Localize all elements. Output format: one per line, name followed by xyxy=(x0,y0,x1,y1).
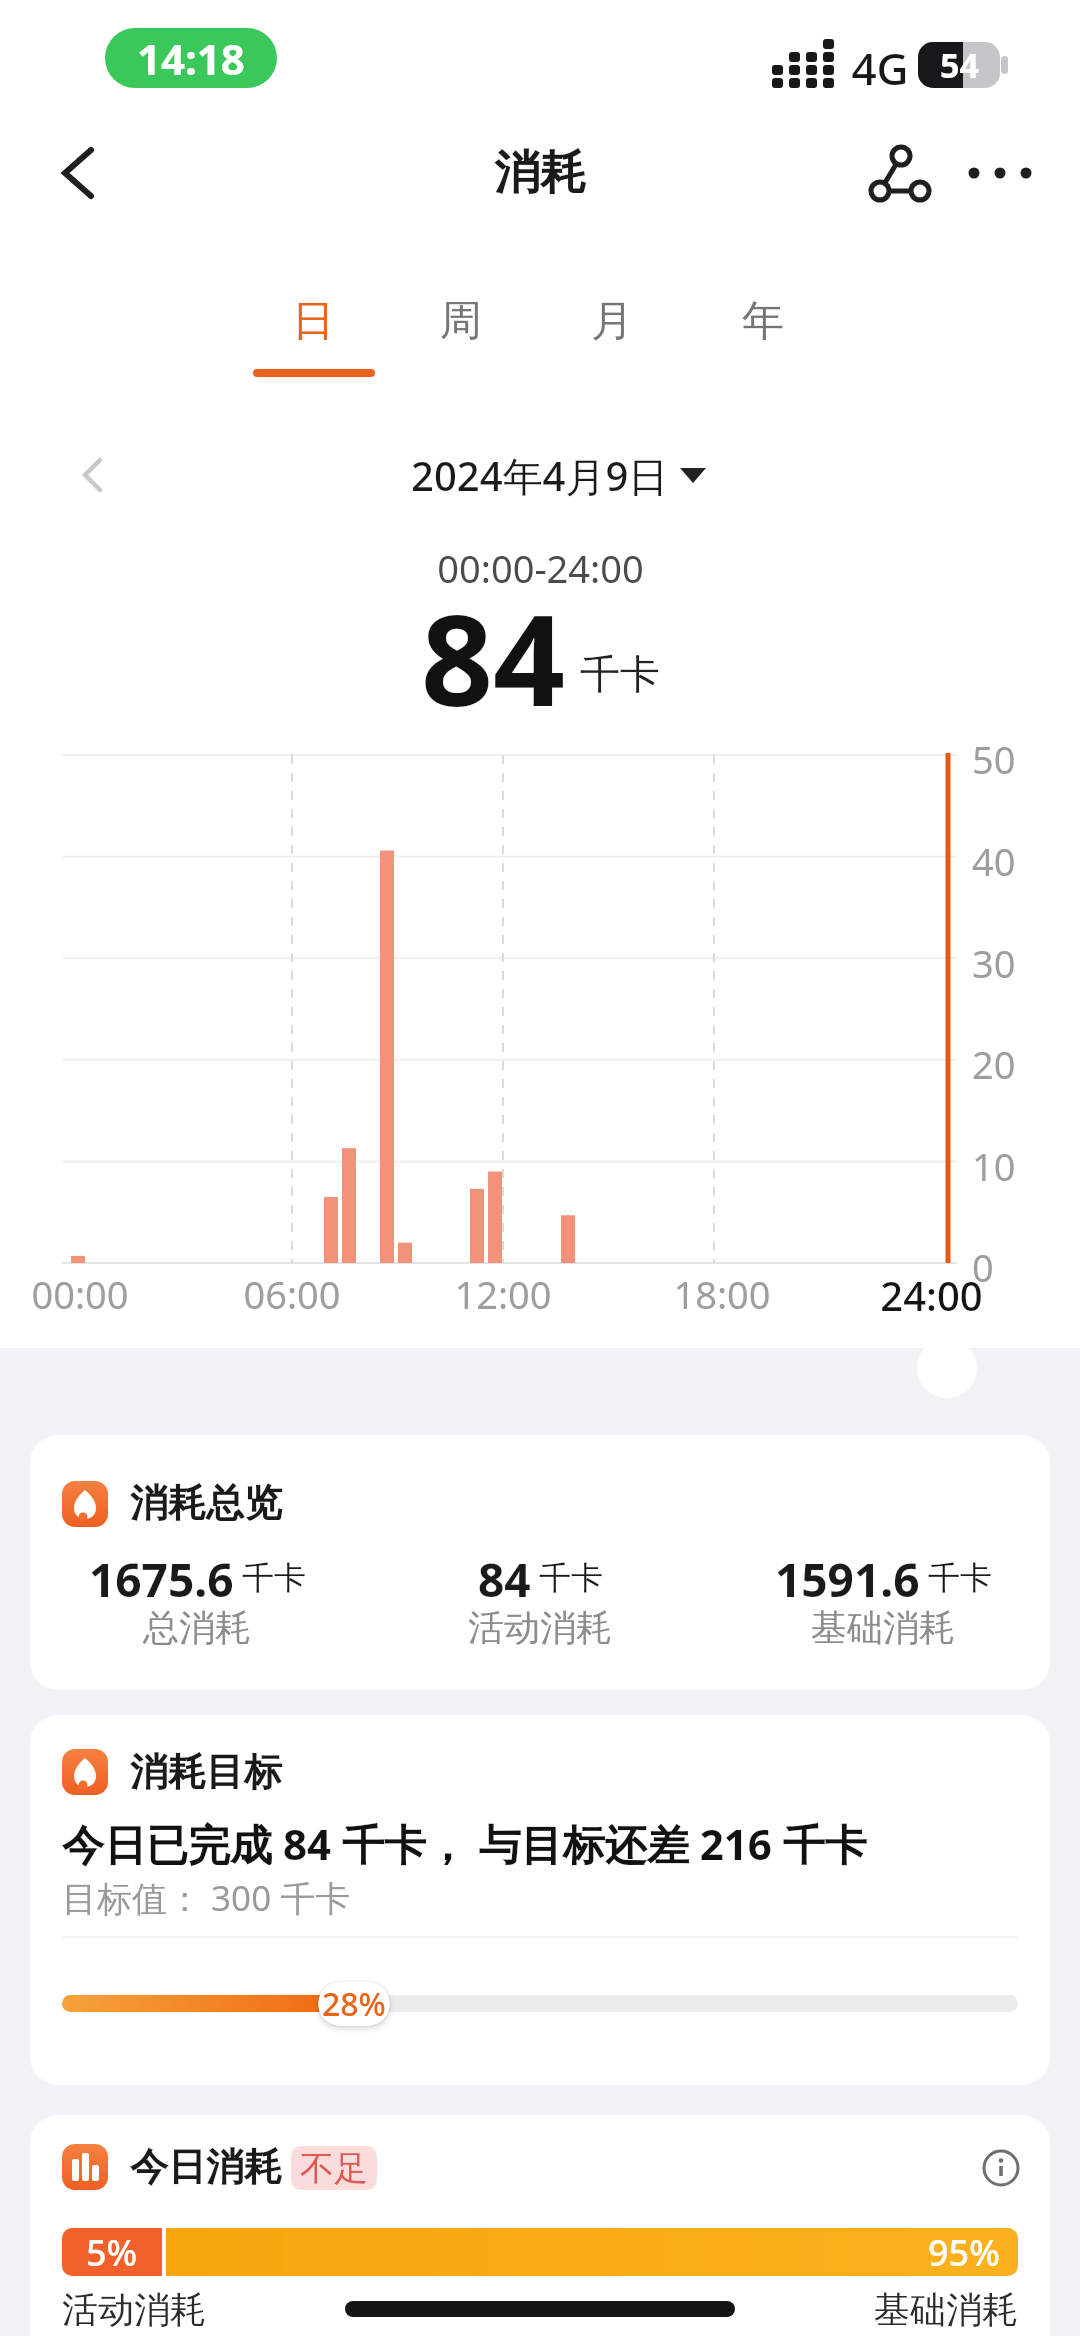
button[interactable]: 周 xyxy=(401,281,521,361)
button[interactable]: 消耗总览 xyxy=(30,1435,1050,1690)
staticText: 今日已完成 84 千卡， 与目标还差 216 千卡 xyxy=(62,1815,867,1872)
staticText: 12:00 xyxy=(454,1268,552,1314)
staticText: 千卡 xyxy=(539,1558,603,1598)
staticText: 1675.6 xyxy=(89,1548,234,1608)
staticText: 目标值： 300 千卡 xyxy=(62,1874,351,1922)
staticText: 不足 xyxy=(300,2147,368,2190)
button[interactable]: 消耗目标 xyxy=(30,1715,1050,2085)
staticText: 月 xyxy=(591,295,633,348)
staticText: 基础消耗 xyxy=(874,2287,1018,2332)
staticText: 活动消耗 xyxy=(62,2287,206,2332)
staticText: 84 xyxy=(478,1548,531,1608)
staticText: 28% xyxy=(322,1982,386,2026)
button[interactable] xyxy=(850,130,944,216)
staticText: 5% xyxy=(86,2228,138,2276)
staticText: 06:00 xyxy=(243,1268,341,1314)
staticText: 千卡 xyxy=(242,1558,306,1598)
staticText: 日 xyxy=(292,295,334,348)
staticText: 20 xyxy=(972,1038,1016,1082)
staticText: 14:18 xyxy=(137,30,245,87)
staticText: 总消耗 xyxy=(143,1605,251,1650)
staticText: 基础消耗 xyxy=(811,1605,955,1650)
staticText: 10 xyxy=(972,1140,1016,1184)
staticText: 24:00 xyxy=(880,1268,983,1314)
staticText: 年 xyxy=(742,295,784,348)
staticText: 4G xyxy=(851,38,909,94)
staticText: 95% xyxy=(928,2228,1000,2276)
staticText: 54 xyxy=(940,42,979,88)
staticText: 1591.6 xyxy=(775,1548,920,1608)
staticText: 84 xyxy=(421,571,566,721)
staticText: 周 xyxy=(440,295,482,348)
button[interactable]: 2024年4月9日 xyxy=(360,440,720,510)
staticText: 千卡 xyxy=(580,649,660,699)
staticText: 消耗总览 xyxy=(130,1479,282,1527)
staticText: 18:00 xyxy=(673,1268,771,1314)
staticText: 00:00-24:00 xyxy=(437,542,644,594)
staticText: 40 xyxy=(972,835,1016,879)
staticText: 千卡 xyxy=(928,1558,992,1598)
staticText: 50 xyxy=(972,733,1016,777)
button[interactable]: 日 xyxy=(253,281,373,361)
staticText: 2024年4月9日 xyxy=(411,448,669,503)
button[interactable] xyxy=(966,2133,1036,2203)
staticText: 今日消耗 xyxy=(130,2143,282,2191)
button[interactable]: 月 xyxy=(552,281,672,361)
staticText: 消耗 xyxy=(494,144,586,202)
staticText: 30 xyxy=(972,937,1016,981)
staticText: 0 xyxy=(972,1241,994,1285)
staticText: 消耗目标 xyxy=(130,1748,282,1796)
button[interactable]: 今日消耗 xyxy=(30,2115,1050,2336)
staticText: 00:00 xyxy=(31,1268,129,1314)
staticText: 活动消耗 xyxy=(468,1605,612,1650)
button[interactable]: 年 xyxy=(703,281,823,361)
button[interactable] xyxy=(36,130,122,216)
button[interactable] xyxy=(952,132,1048,214)
